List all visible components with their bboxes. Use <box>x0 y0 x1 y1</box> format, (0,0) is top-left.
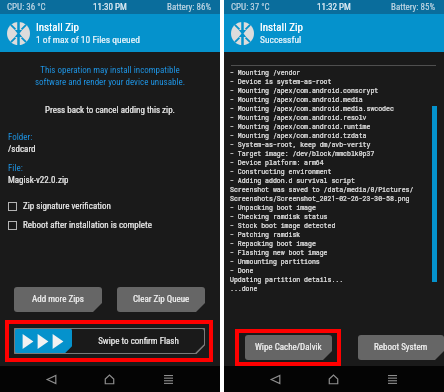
staticText: Screenshots/Screenshot_2021-02-26-23-30-… <box>230 194 410 203</box>
staticText: Clear Zip Queue <box>133 294 190 305</box>
staticText: CPU: 36 °C <box>7 2 46 13</box>
staticText: File: <box>8 163 23 174</box>
staticText: Add more Zips <box>32 294 84 305</box>
button[interactable]: Swipe to confirm Flash <box>14 328 205 354</box>
staticText: Install Zip <box>36 21 79 34</box>
staticText: - Patching ramdisk <box>230 230 301 239</box>
staticText: Successful <box>260 34 302 45</box>
button[interactable]: Clear Zip Queue <box>117 287 205 312</box>
staticText: - Device is system-as-root <box>230 77 332 86</box>
staticText: /sdcard <box>8 144 36 155</box>
staticText: Swipe to confirm Flash <box>72 336 205 347</box>
staticText: - Unmounting partitions <box>230 257 320 266</box>
staticText: - Mounting /apex/com.android.tzdata <box>230 131 367 140</box>
staticText: - Mounting /apex/com.android.runtime <box>230 122 371 131</box>
staticText: Zip signature verification <box>23 201 111 212</box>
staticText: - Unpacking boot image <box>230 203 316 212</box>
staticText: Wipe Cache/Dalvik <box>255 342 322 353</box>
staticText: - Done <box>230 266 254 275</box>
button[interactable]: Reboot System <box>358 335 444 360</box>
staticText: - System-as-root, keep dm/avb-verity <box>230 140 371 149</box>
staticText: - Flashing new boot image <box>230 248 328 257</box>
staticText: - Checking ramdisk status <box>230 212 328 221</box>
staticText: CPU: 37 °C <box>231 2 270 13</box>
staticText: - Mounting /apex/com.android.resolv <box>230 113 367 122</box>
button[interactable]: Recent apps <box>363 366 422 392</box>
staticText: 11:32 PM <box>317 2 351 13</box>
staticText: Screenshot was saved to /data/media/0/Pi… <box>230 185 414 194</box>
button[interactable]: Add more Zips <box>14 287 102 312</box>
staticText: - Stock boot image detected <box>230 221 336 230</box>
staticText: Install Zip <box>260 21 303 34</box>
staticText: Press back to cancel adding this zip. <box>0 105 220 116</box>
staticText: - Mounting /apex/com.android.media.swcod… <box>230 104 394 113</box>
staticText: Magisk-v22.0.zip <box>8 175 69 186</box>
staticText: - Repacking boot image <box>230 239 316 248</box>
staticText: ...done <box>230 284 258 293</box>
staticText: This operation may install incompatible <box>0 65 220 76</box>
staticText: 11:30 PM <box>93 2 127 13</box>
staticText: Battery: 86% <box>167 2 212 13</box>
staticText: Battery: 85% <box>391 2 436 13</box>
button[interactable]: Zip signature verification <box>0 201 220 212</box>
button[interactable]: Reboot after installation is complete <box>0 220 220 231</box>
staticText: - Mounting /apex/com.android.conscrypt <box>230 86 379 95</box>
button[interactable]: Back <box>22 366 80 392</box>
staticText: software and render your device unusable… <box>0 77 220 88</box>
staticText: Folder: <box>8 132 33 143</box>
staticText: Reboot System <box>374 342 428 353</box>
staticText: Updating partition details... <box>230 275 344 284</box>
staticText: - Device platform: arm64 <box>230 158 324 167</box>
staticText: - Target image: /dev/block/mmcblk0p37 <box>230 149 375 158</box>
staticText: - Adding addon.d survival script <box>230 176 355 185</box>
staticText: - Mounting /vendor <box>230 68 301 77</box>
staticText: 1 of max of 10 Files queued <box>36 34 140 45</box>
button[interactable]: Home <box>304 366 363 392</box>
button[interactable]: Back <box>246 366 304 392</box>
button[interactable]: Wipe Cache/Dalvik <box>245 335 332 360</box>
staticText: Reboot after installation is complete <box>23 220 152 231</box>
button[interactable]: Home <box>80 366 139 392</box>
button[interactable]: Recent apps <box>139 366 198 392</box>
staticText: - Mounting /apex/com.android.media <box>230 95 363 104</box>
staticText: - Constructing environment <box>230 167 332 176</box>
